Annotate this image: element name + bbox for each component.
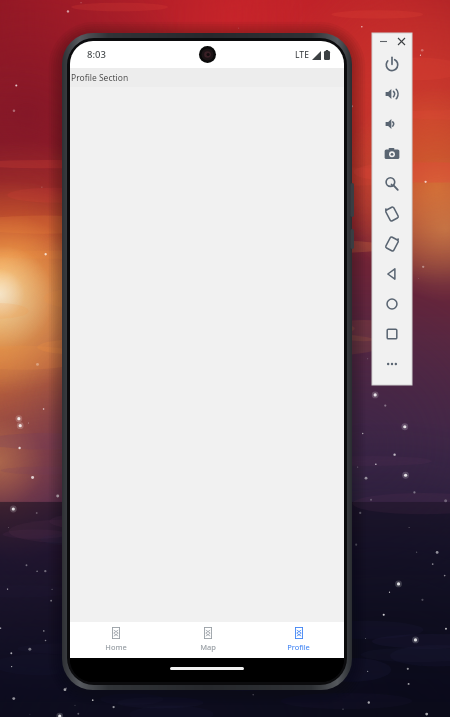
other: Home xyxy=(112,627,120,639)
staticText: 8:03 xyxy=(87,48,106,61)
button[interactable]: Zoom xyxy=(372,169,412,199)
button[interactable]: Map xyxy=(162,622,253,658)
button[interactable]: Overview xyxy=(372,319,412,349)
button[interactable]: Minimize xyxy=(376,34,390,48)
button[interactable]: Volume down xyxy=(372,109,412,139)
button[interactable]: Profile xyxy=(253,622,344,658)
button[interactable]: Back xyxy=(372,259,412,289)
button[interactable]: Take screenshot xyxy=(372,139,412,169)
button[interactable]: Close xyxy=(394,34,408,48)
button[interactable]: Rotate right xyxy=(372,229,412,259)
staticText: Map xyxy=(200,642,216,652)
button[interactable]: More xyxy=(372,349,412,379)
other: Profile xyxy=(295,627,303,639)
staticText: Profile Section xyxy=(71,72,129,84)
staticText: LTE xyxy=(295,49,309,61)
button[interactable]: Power xyxy=(372,49,412,79)
button[interactable]: Volume up xyxy=(372,79,412,109)
button[interactable]: Rotate left xyxy=(372,199,412,229)
other: Map xyxy=(204,627,212,639)
staticText: Profile xyxy=(287,642,310,652)
staticText: Home xyxy=(105,642,127,652)
button[interactable]: Home xyxy=(372,289,412,319)
button[interactable]: Home xyxy=(70,622,162,658)
